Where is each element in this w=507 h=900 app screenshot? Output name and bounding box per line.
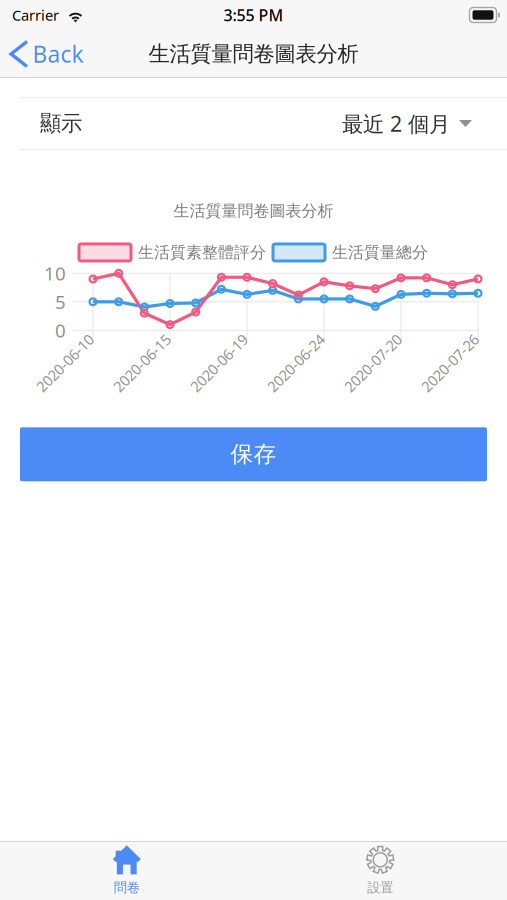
staticText: 生活質量總分	[332, 243, 428, 262]
staticText: 2020-06-15	[105, 353, 179, 373]
button[interactable]: 顯示	[0, 97, 507, 150]
staticText: 2020-07-20	[336, 353, 410, 373]
staticText: 生活質素整體評分	[138, 243, 266, 262]
staticText: Back	[32, 39, 83, 69]
staticText: 2020-06-10	[28, 353, 102, 373]
staticText: 顯示	[40, 110, 82, 137]
staticText: 問卷	[114, 879, 140, 896]
staticText: 生活質量問卷圖表分析	[173, 201, 333, 221]
staticText: 5	[55, 289, 66, 314]
staticText: 2020-06-19	[182, 353, 256, 373]
staticText: 最近 2 個月	[342, 109, 450, 138]
staticText: 生活質量問卷圖表分析	[148, 41, 358, 67]
button[interactable]: 保存	[20, 427, 487, 481]
button[interactable]: Back	[0, 30, 95, 78]
staticText: 3:55 PM	[223, 4, 283, 26]
staticText: 設置	[367, 879, 393, 896]
staticText: 10	[44, 261, 66, 286]
staticText: 2020-06-24	[259, 353, 333, 373]
staticText: 0	[55, 318, 66, 343]
staticText: Carrier	[12, 5, 59, 25]
staticText: 保存	[230, 440, 276, 468]
staticText: 2020-07-26	[413, 353, 487, 373]
button[interactable]: 設置	[253, 841, 507, 900]
button[interactable]: 問卷	[0, 841, 253, 900]
